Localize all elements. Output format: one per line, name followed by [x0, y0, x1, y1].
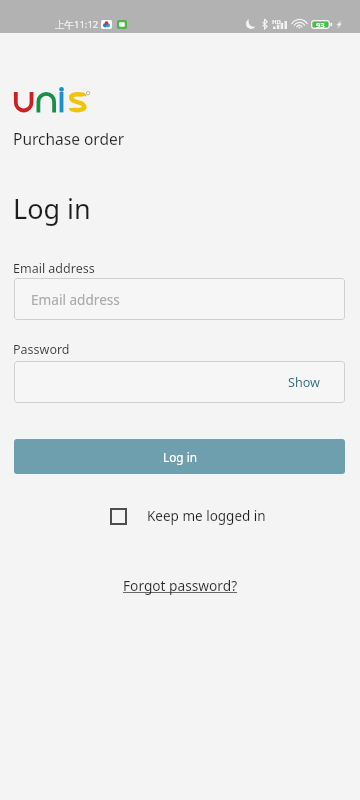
staticText: Show [288, 374, 320, 391]
button[interactable]: Email address [14, 278, 345, 320]
staticText: Password [13, 341, 70, 358]
staticText: Log in [13, 190, 91, 227]
button[interactable]: Log in [14, 439, 345, 474]
button[interactable]: Show [14, 361, 345, 403]
staticText: 93 [316, 20, 325, 30]
staticText: Forgot password? [123, 576, 238, 595]
staticText: Log in [163, 449, 197, 465]
staticText: Keep me logged in [147, 507, 266, 525]
staticText: Purchase order [13, 128, 125, 149]
staticText: Email address [31, 290, 120, 309]
staticText: 上午11:12 [55, 18, 99, 31]
staticText: HD [272, 18, 281, 26]
button[interactable]: Forgot password? [123, 576, 238, 595]
staticText: Email address [13, 260, 95, 277]
button[interactable]: Show [262, 361, 345, 403]
button[interactable]: Keep me logged in [110, 507, 266, 525]
